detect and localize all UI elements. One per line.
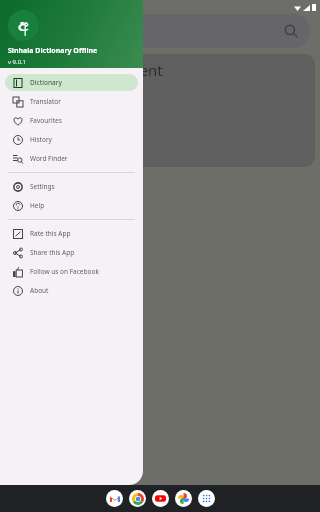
button[interactable]: Chrome	[129, 490, 146, 507]
staticText: History	[30, 135, 52, 144]
button[interactable]: Help	[5, 197, 138, 214]
button[interactable]: Gmail	[106, 490, 123, 507]
staticText: අ	[18, 17, 29, 34]
button[interactable]: Photos	[175, 490, 192, 507]
button[interactable]: YouTube	[152, 490, 169, 507]
button[interactable]: Rate this App	[5, 225, 138, 242]
button[interactable]: Settings	[5, 178, 138, 195]
staticText: Word Finder	[30, 154, 68, 163]
button[interactable]: All apps	[198, 490, 215, 507]
staticText: Rate this App	[30, 229, 71, 238]
button[interactable]: Dictionary	[5, 74, 138, 91]
button[interactable]: Follow us on Facebook	[5, 263, 138, 280]
button[interactable]: Search	[8, 14, 310, 48]
staticText: Share this App	[30, 248, 75, 257]
staticText: Settings	[30, 182, 55, 191]
staticText: v 9.0.1	[8, 58, 27, 66]
staticText: 10:17	[4, 2, 22, 12]
staticText: Favourites	[30, 116, 62, 125]
staticText: Translator	[30, 97, 61, 106]
staticText: පියාපත් අස්ථිමය	[16, 109, 72, 120]
staticText: Help	[30, 201, 45, 210]
button[interactable]: Share this App	[5, 244, 138, 261]
button[interactable]: History	[5, 131, 138, 148]
staticText: pterygiophopidial	[16, 88, 108, 103]
staticText: Follow us on Facebook	[30, 267, 99, 276]
button[interactable]: Word of the Moment	[6, 54, 315, 167]
button[interactable]: Word Finder	[5, 150, 138, 167]
other: Search	[284, 24, 298, 38]
button[interactable]: About	[5, 282, 138, 299]
staticText: Word of the Moment	[16, 60, 163, 80]
staticText: About	[30, 286, 49, 295]
button[interactable]: Translator	[5, 93, 138, 110]
staticText: Dictionary	[30, 78, 62, 87]
staticText: Sinhala Dictionary Offline	[8, 46, 98, 56]
button[interactable]: Favourites	[5, 112, 138, 129]
